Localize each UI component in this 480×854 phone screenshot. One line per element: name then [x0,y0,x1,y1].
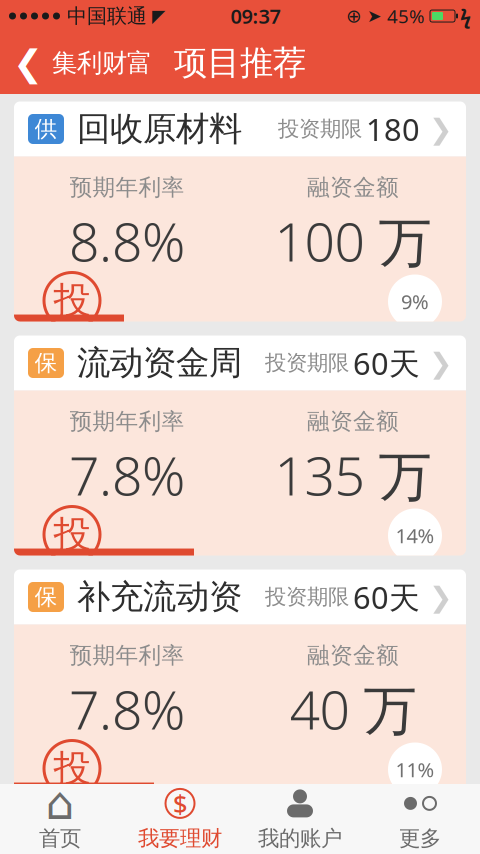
staticText: 供 [34,115,57,143]
staticText: 预期年利率 [69,641,184,669]
button[interactable]: 保 [0,335,480,555]
staticText: ❯ [429,347,452,379]
button[interactable]: 供 [0,101,480,321]
staticText: 预期年利率 [69,407,184,435]
staticText: 45% [387,4,425,28]
staticText: 项目推荐 [174,42,306,83]
staticText: 保 [34,349,57,377]
staticText: 集利财富 [52,47,152,78]
staticText: 融资金额 [307,641,399,669]
staticText: 投资期限 [265,584,349,610]
staticText: ⌂ [45,778,74,829]
staticText: 回收原材料 [77,108,242,149]
staticText: ➤ [367,6,382,26]
staticText: ❯ [429,581,452,613]
staticText: 40 万 [289,673,416,744]
button[interactable]: ❮ [0,37,165,89]
staticText: 投资期限 [265,350,349,376]
button[interactable]: 保 [0,569,480,789]
staticText: ⊕ [346,5,362,27]
staticText: 60天 [353,577,420,617]
staticText: 投 [53,746,90,791]
staticText: 09:37 [230,3,280,29]
staticText: 更多 [399,825,441,852]
staticText: 9% [401,288,429,315]
button[interactable]: ⌂ [0,784,120,854]
staticText: 14% [395,522,434,549]
staticText: ❯ [429,113,452,145]
staticText: 融资金额 [307,407,399,435]
staticText: 保 [34,583,57,611]
staticText: 首页 [39,825,81,852]
staticText: 投 [53,512,90,557]
staticText: 中国联通 [67,4,147,28]
staticText: ❮ [13,43,43,83]
staticText: 100 万 [274,205,431,276]
staticText: 预期年利率 [69,173,184,201]
button[interactable]: 我的账户 [240,784,360,854]
staticText: 我要理财 [138,825,222,852]
staticText: 135 万 [274,439,431,510]
button[interactable]: $ [120,784,240,854]
staticText: 11% [395,756,434,783]
staticText: 投资期限 [278,116,362,142]
staticText: 180 [366,109,420,149]
staticText: 补充流动资 [77,576,242,617]
staticText: 7.8% [69,673,185,744]
staticText: 投 [53,278,90,323]
staticText: 8.8% [69,205,185,276]
staticText: 7.8% [69,439,185,510]
staticText: 融资金额 [307,173,399,201]
staticText: 流动资金周 [77,342,242,383]
staticText: $ [173,787,187,820]
staticText: 我的账户 [258,825,342,852]
button[interactable]: 更多 [360,784,480,854]
staticText: ϟ [460,3,471,29]
staticText: 60天 [353,343,420,383]
staticText: ◤ [152,6,165,26]
